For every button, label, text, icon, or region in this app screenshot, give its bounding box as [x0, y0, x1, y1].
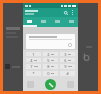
button[interactable]: Tab: [50, 17, 64, 25]
button[interactable]: 5: [43, 58, 58, 62]
button[interactable]: Tab: [36, 17, 50, 25]
button[interactable]: Dial tab: [23, 17, 36, 25]
staticText: *: [32, 71, 35, 76]
staticText: 7: [30, 64, 33, 69]
button[interactable]: 3: [60, 52, 75, 56]
staticText: #: [66, 71, 69, 76]
button[interactable]: Call: [45, 79, 56, 90]
staticText: 2: [47, 52, 50, 56]
staticText: 8: [47, 64, 50, 69]
button[interactable]: Tab: [64, 17, 78, 25]
button[interactable]: Backspace: [67, 42, 72, 47]
button[interactable]: 6: [60, 58, 75, 62]
staticText: 3: [64, 52, 67, 56]
button[interactable]: More options: [69, 9, 76, 16]
staticText: 4: [30, 58, 33, 62]
button[interactable]: 1: [26, 52, 41, 56]
button[interactable]: 0: [43, 71, 58, 76]
staticText: 6: [64, 58, 67, 62]
button[interactable]: *: [26, 71, 41, 76]
button[interactable]: 8: [43, 64, 58, 69]
staticText: 1: [32, 52, 35, 56]
button[interactable]: 7: [26, 64, 41, 69]
staticText: 0: [47, 71, 50, 76]
button[interactable]: 2: [43, 52, 58, 56]
button[interactable]: 9: [60, 64, 75, 69]
button[interactable]: 4: [26, 58, 41, 62]
button[interactable]: Search: [62, 9, 69, 16]
button[interactable]: Backspace: [26, 34, 75, 49]
staticText: 9: [64, 64, 67, 69]
staticText: 5: [47, 58, 50, 62]
button[interactable]: #: [60, 71, 75, 76]
